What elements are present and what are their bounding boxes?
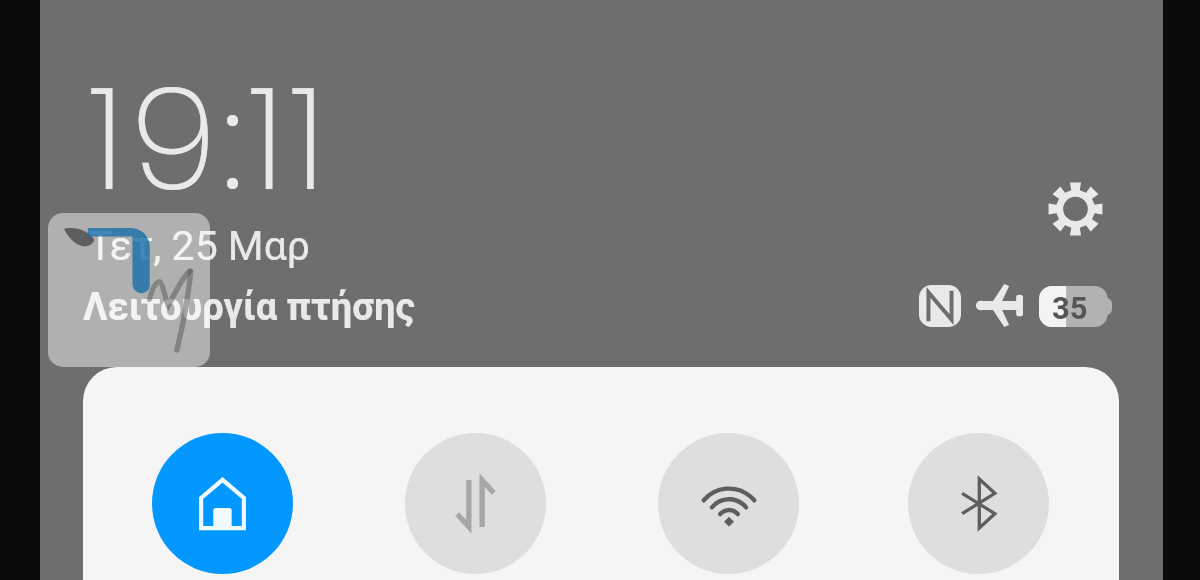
staticText: Λειτουργία πτήσης xyxy=(83,285,416,330)
button[interactable]: Wi-Fi xyxy=(658,433,799,574)
staticText: 19:11 xyxy=(88,40,331,239)
staticText: 35 xyxy=(1052,290,1088,326)
button[interactable]: Settings xyxy=(1029,163,1121,255)
staticText: Τετ, 25 Μαρ xyxy=(88,222,311,270)
button[interactable]: Bluetooth xyxy=(908,433,1049,574)
button[interactable]: Mobile data xyxy=(405,433,546,574)
button[interactable]: Home xyxy=(152,433,293,574)
